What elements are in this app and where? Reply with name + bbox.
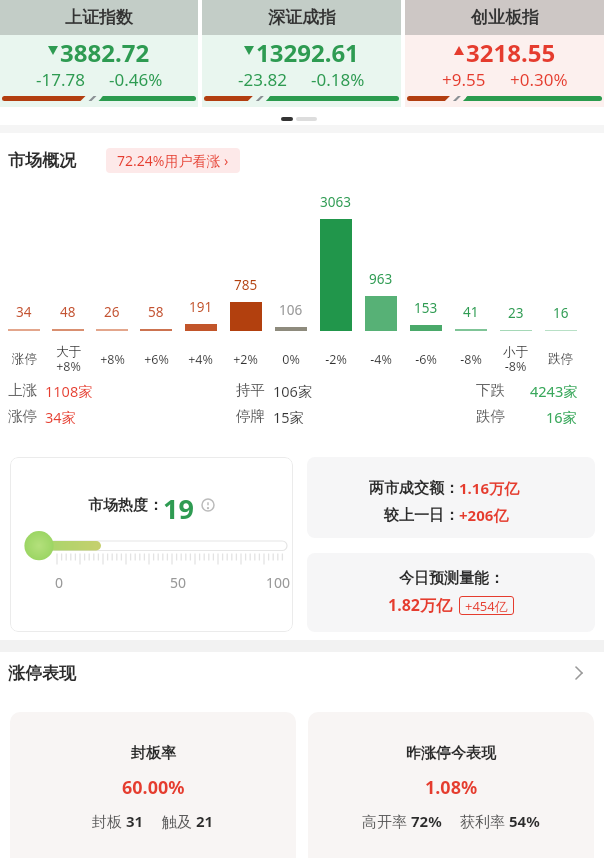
staticText: 1.82万亿 bbox=[388, 594, 452, 616]
button[interactable]: 涨停表现 bbox=[0, 661, 604, 685]
staticText: 0% bbox=[282, 351, 300, 368]
staticText: 54% bbox=[509, 811, 540, 831]
button[interactable]: 上证指数 bbox=[0, 0, 198, 107]
staticText: 跌停 bbox=[548, 351, 573, 367]
staticText: 34家 bbox=[45, 407, 77, 424]
staticText: 48 bbox=[60, 303, 76, 321]
staticText: +4% bbox=[188, 351, 213, 368]
staticText: 3063 bbox=[320, 193, 351, 211]
staticText: +8% bbox=[100, 351, 125, 368]
button[interactable]: 市场热度： bbox=[10, 457, 293, 632]
staticText: 23 bbox=[508, 304, 524, 322]
staticText: -4% bbox=[370, 351, 392, 368]
staticText: 创业板指 bbox=[471, 7, 539, 28]
staticText: 19 bbox=[163, 490, 194, 520]
staticText: 1.08% bbox=[425, 775, 478, 800]
staticText: 15家 bbox=[273, 407, 305, 424]
staticText: 市场热度： bbox=[88, 496, 163, 515]
staticText: 昨涨停今表现 bbox=[406, 744, 496, 763]
button[interactable]: 两市成交额： bbox=[307, 457, 595, 538]
staticText: +2% bbox=[233, 351, 258, 368]
staticText: 41 bbox=[463, 303, 479, 321]
staticText: 16家 bbox=[546, 407, 578, 424]
staticText: 72% bbox=[411, 811, 442, 831]
staticText: 上涨 bbox=[8, 381, 37, 398]
staticText: 1.16万亿 bbox=[459, 478, 519, 498]
staticText: 785 bbox=[234, 276, 258, 294]
staticText: 两市成交额： bbox=[369, 479, 459, 498]
staticText: -8% bbox=[460, 351, 482, 368]
staticText: 191 bbox=[189, 298, 213, 316]
staticText: 106 bbox=[279, 301, 303, 319]
staticText: 16 bbox=[553, 304, 569, 322]
button[interactable]: 封板率 bbox=[10, 712, 296, 858]
staticText: 大于 +8% bbox=[56, 344, 81, 374]
staticText: 100 bbox=[266, 573, 291, 592]
staticText: +9.55 bbox=[442, 68, 486, 86]
staticText: +206亿 bbox=[459, 505, 509, 525]
staticText: 涨停 bbox=[12, 351, 37, 367]
button[interactable]: 今日预测量能： bbox=[307, 553, 595, 632]
staticText: 获利率 bbox=[460, 811, 509, 831]
button[interactable]: 72.24%用户看涨 › bbox=[106, 148, 240, 173]
staticText: -0.46% bbox=[109, 68, 163, 86]
staticText: 3218.55 bbox=[466, 36, 556, 64]
staticText: 3882.72 bbox=[60, 36, 150, 64]
staticText: +454亿 bbox=[465, 597, 508, 615]
staticText: 市场概况 bbox=[8, 150, 76, 171]
staticText: -0.18% bbox=[311, 68, 365, 86]
staticText: 深证成指 bbox=[268, 7, 336, 28]
staticText: 21 bbox=[196, 811, 214, 831]
staticText: 60.00% bbox=[122, 775, 185, 800]
staticText: 72.24%用户看涨 › bbox=[117, 151, 229, 170]
staticText: 持平 bbox=[236, 381, 265, 398]
staticText: 4243家 bbox=[530, 381, 578, 398]
staticText: 涨停表现 bbox=[8, 663, 76, 684]
staticText: 50 bbox=[170, 573, 187, 592]
staticText: 封板率 bbox=[131, 744, 176, 763]
staticText: 涨停 bbox=[8, 407, 37, 424]
staticText: 停牌 bbox=[236, 407, 265, 424]
staticText: 34 bbox=[16, 303, 32, 321]
staticText: 58 bbox=[148, 303, 164, 321]
staticText: -2% bbox=[325, 351, 347, 368]
staticText: 触及 bbox=[162, 811, 196, 831]
staticText: 跌停 bbox=[476, 407, 505, 424]
button[interactable]: 昨涨停今表现 bbox=[308, 712, 594, 858]
staticText: 封板 bbox=[92, 811, 126, 831]
staticText: 0 bbox=[55, 573, 64, 592]
staticText: 963 bbox=[369, 270, 393, 288]
staticText: 较上一日： bbox=[384, 506, 459, 525]
button[interactable]: 深证成指 bbox=[202, 0, 401, 107]
staticText: 小于 -8% bbox=[503, 344, 528, 374]
staticText: -17.78 bbox=[36, 68, 85, 86]
staticText: 13292.61 bbox=[256, 36, 359, 64]
staticText: 下跌 bbox=[476, 381, 505, 398]
staticText: 高开率 bbox=[362, 811, 411, 831]
staticText: 今日预测量能： bbox=[399, 569, 504, 588]
button[interactable]: 创业板指 bbox=[405, 0, 604, 107]
staticText: -6% bbox=[415, 351, 437, 368]
staticText: 31 bbox=[126, 811, 144, 831]
staticText: 26 bbox=[104, 303, 120, 321]
staticText: -23.82 bbox=[238, 68, 287, 86]
staticText: 153 bbox=[414, 299, 438, 317]
staticText: 106家 bbox=[273, 381, 313, 398]
staticText: +6% bbox=[144, 351, 169, 368]
staticText: 1108家 bbox=[45, 381, 93, 398]
staticText: 上证指数 bbox=[65, 7, 133, 28]
staticText: +0.30% bbox=[510, 68, 568, 86]
